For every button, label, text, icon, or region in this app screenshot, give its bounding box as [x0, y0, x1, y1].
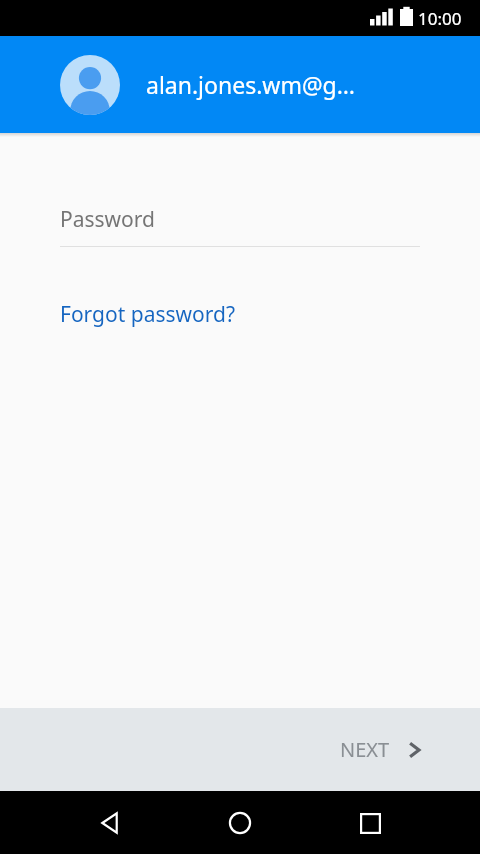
- button[interactable]: Recent apps: [340, 793, 400, 853]
- button[interactable]: NEXT: [332, 726, 432, 773]
- button[interactable]: Back: [80, 793, 140, 853]
- button[interactable]: Password: [60, 205, 420, 247]
- staticText: 10:00: [418, 7, 462, 30]
- staticText: Forgot password?: [60, 300, 236, 329]
- button[interactable]: alan.jones.wm@g…: [0, 36, 480, 133]
- staticText: NEXT: [340, 736, 390, 763]
- staticText: alan.jones.wm@g…: [146, 69, 355, 100]
- button[interactable]: Forgot password?: [60, 300, 236, 329]
- staticText: Password: [60, 205, 155, 234]
- button[interactable]: Home: [210, 793, 270, 853]
